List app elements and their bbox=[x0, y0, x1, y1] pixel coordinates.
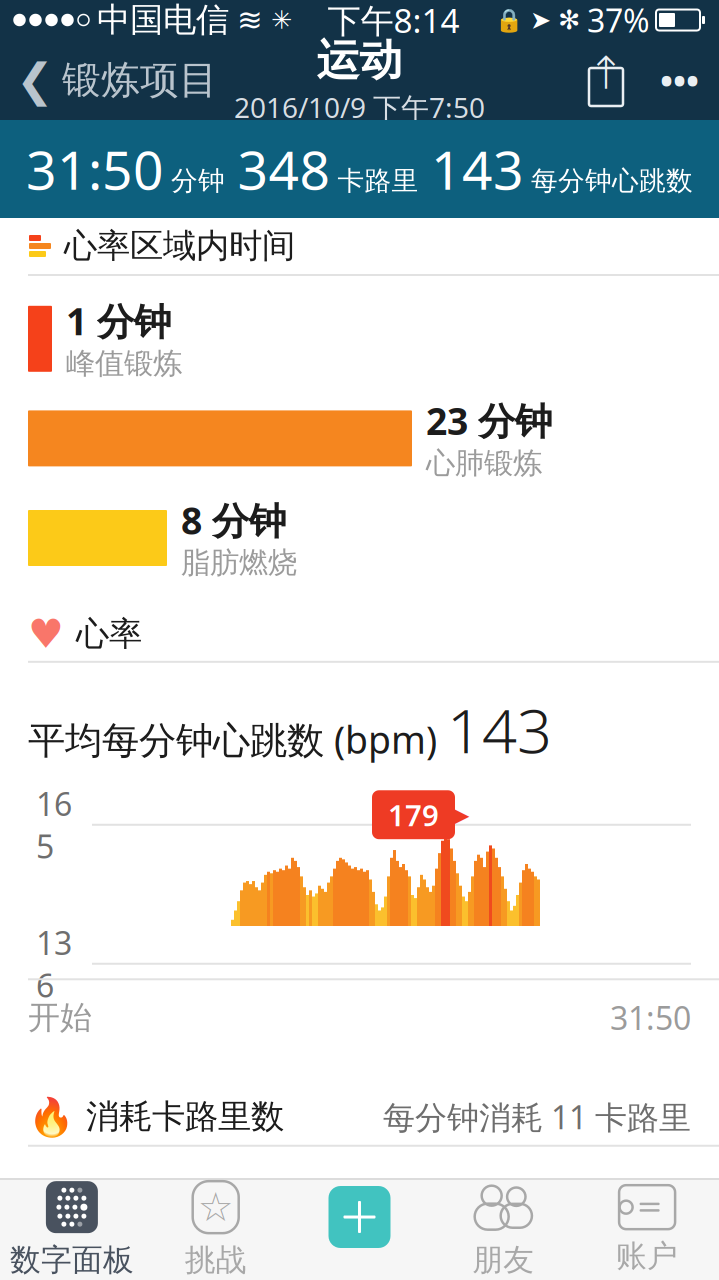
staticText: 心肺锻炼 bbox=[426, 445, 542, 481]
staticText: 平均每分钟心跳数 (bpm) bbox=[28, 715, 437, 764]
staticText: 数字面板 bbox=[10, 1241, 134, 1279]
staticText: 2016/10/9 下午7:50 bbox=[234, 89, 485, 126]
staticText: 锻炼项目 bbox=[62, 56, 218, 104]
staticText: ➤ bbox=[530, 6, 551, 34]
staticText: 每分钟心跳数 bbox=[531, 164, 693, 197]
staticText: 开始 bbox=[28, 998, 92, 1037]
button[interactable]: 更多 bbox=[640, 41, 719, 119]
staticText: 179 bbox=[388, 795, 439, 834]
staticText: 心率区域内时间 bbox=[64, 225, 295, 266]
staticText: 挑战 bbox=[185, 1241, 247, 1279]
button[interactable]: 朋友 bbox=[431, 1180, 575, 1280]
staticText: 脂肪燃烧 bbox=[181, 545, 297, 581]
staticText: 165 bbox=[36, 782, 72, 867]
staticText: 🔒 bbox=[495, 7, 523, 33]
staticText: ♥ bbox=[28, 611, 64, 656]
staticText: 账户 bbox=[616, 1237, 678, 1275]
staticText: 31:50 bbox=[26, 134, 164, 204]
button[interactable]: 数字面板 bbox=[0, 1180, 144, 1280]
staticText: 消耗卡路里数 bbox=[86, 1096, 284, 1137]
staticText: 348 bbox=[237, 134, 330, 204]
staticText: 23 分钟 bbox=[426, 396, 552, 445]
button[interactable]: ☆ bbox=[144, 1180, 288, 1280]
staticText: 分钟 bbox=[171, 164, 225, 197]
staticText: ✻ bbox=[558, 5, 580, 35]
staticText: ↑ bbox=[587, 47, 625, 99]
staticText: 🔥 bbox=[28, 1095, 74, 1138]
staticText: 8 分钟 bbox=[181, 495, 286, 545]
staticText: 朋友 bbox=[472, 1241, 534, 1279]
staticText: 运动 bbox=[316, 34, 402, 87]
staticText: 37% bbox=[587, 0, 650, 41]
button[interactable]: 分享 bbox=[572, 41, 640, 119]
staticText: ✳ bbox=[271, 6, 292, 34]
staticText: 峰值锻炼 bbox=[66, 346, 182, 382]
staticText: 44 bbox=[28, 1271, 58, 1280]
staticText: 1 分钟 bbox=[66, 296, 171, 346]
staticText: ≋ bbox=[237, 3, 263, 37]
staticText: 每分钟消耗 11 卡路里 bbox=[383, 1095, 691, 1138]
staticText: 中国电信 bbox=[97, 0, 229, 40]
staticText: 下午8:14 bbox=[327, 0, 459, 42]
staticText: 卡路里 bbox=[149, 1199, 260, 1245]
staticText: 143 bbox=[447, 689, 552, 770]
staticText: 136 bbox=[36, 921, 72, 1006]
button[interactable]: 账户 bbox=[575, 1180, 719, 1280]
staticText: 卡路里 bbox=[337, 164, 418, 197]
staticText: 348 bbox=[28, 1167, 139, 1252]
staticText: ❮ bbox=[16, 54, 54, 106]
staticText: ☆ bbox=[198, 1184, 234, 1230]
staticText: ••• bbox=[660, 57, 699, 103]
staticText: 心率 bbox=[76, 613, 142, 654]
staticText: 143 bbox=[431, 134, 524, 204]
staticText: ▶ bbox=[451, 801, 469, 828]
staticText: 31:50 bbox=[610, 996, 691, 1039]
button[interactable]: ❮ bbox=[0, 41, 234, 119]
button[interactable]: 添加 bbox=[288, 1180, 431, 1280]
